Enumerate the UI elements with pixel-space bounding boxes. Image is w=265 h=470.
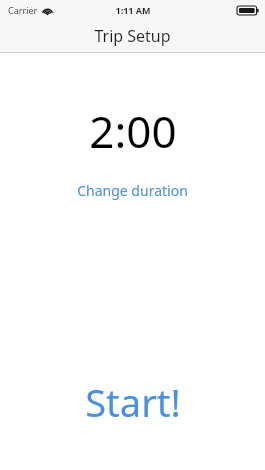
staticText: Carrier <box>8 4 38 16</box>
staticText: Change duration <box>77 181 188 200</box>
staticText: Start! <box>85 376 181 428</box>
staticText: Trip Setup <box>94 25 171 47</box>
staticText: 2:00 <box>89 101 177 161</box>
button[interactable]: Start! <box>69 372 197 432</box>
button[interactable]: Change duration <box>65 177 200 204</box>
staticText: 1:11 AM <box>115 4 151 16</box>
